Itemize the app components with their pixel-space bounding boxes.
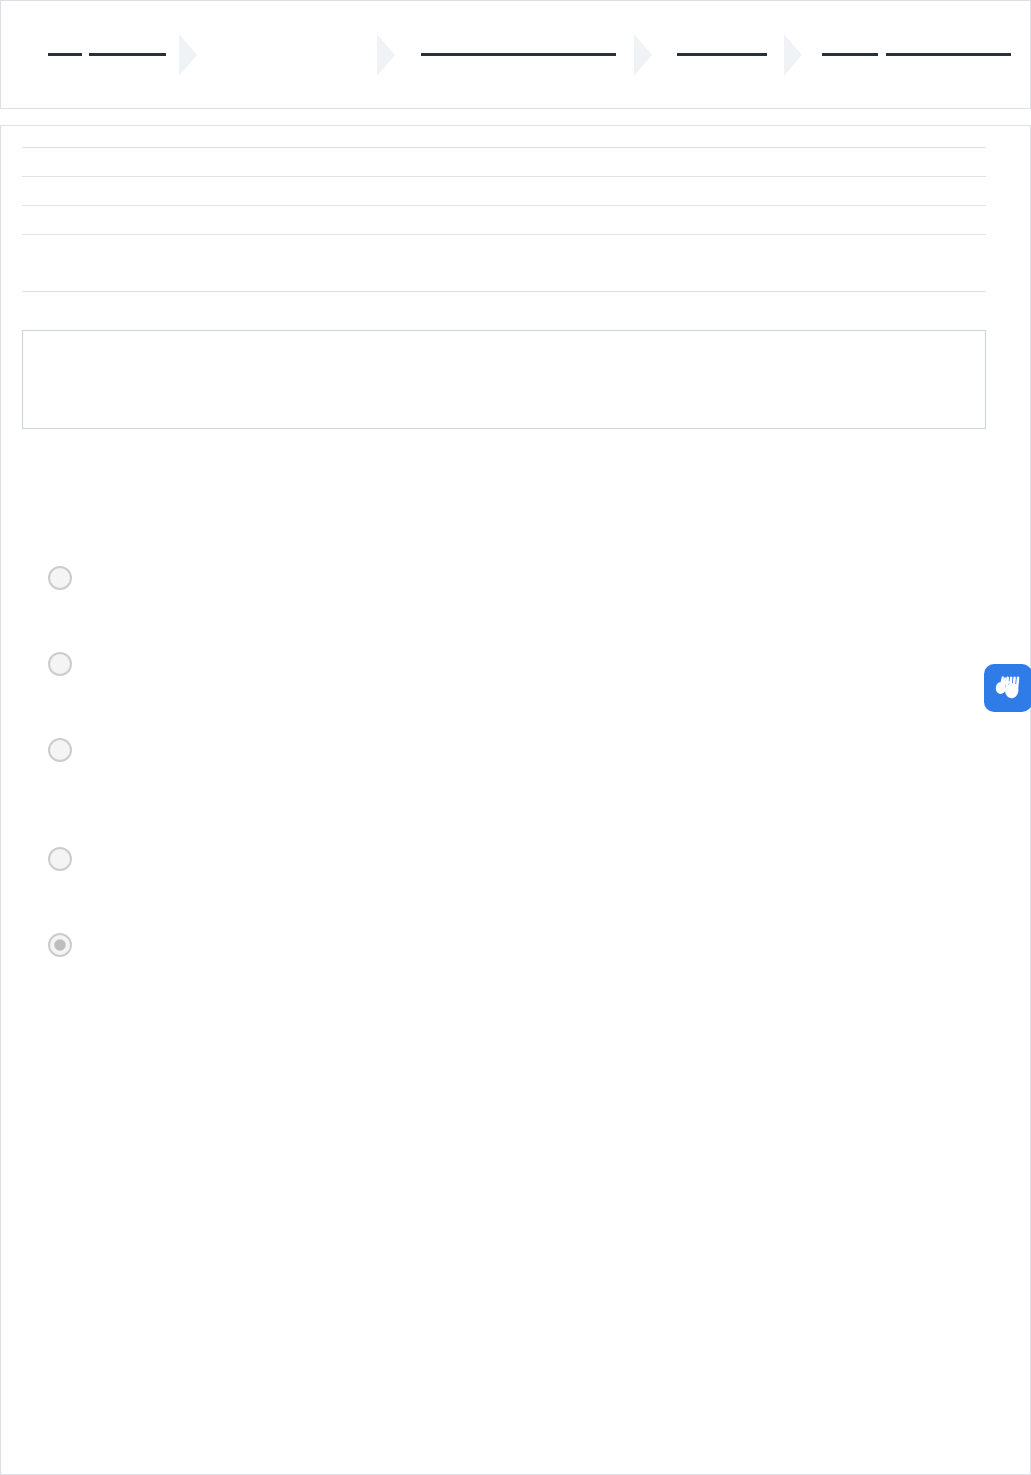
button[interactable] — [48, 53, 166, 56]
button[interactable] — [0, 621, 1031, 707]
button[interactable] — [22, 330, 986, 429]
button[interactable]: Sign language accessibility — [984, 664, 1031, 712]
button[interactable] — [0, 707, 1031, 793]
button[interactable] — [0, 902, 1031, 988]
button[interactable] — [822, 53, 1011, 56]
